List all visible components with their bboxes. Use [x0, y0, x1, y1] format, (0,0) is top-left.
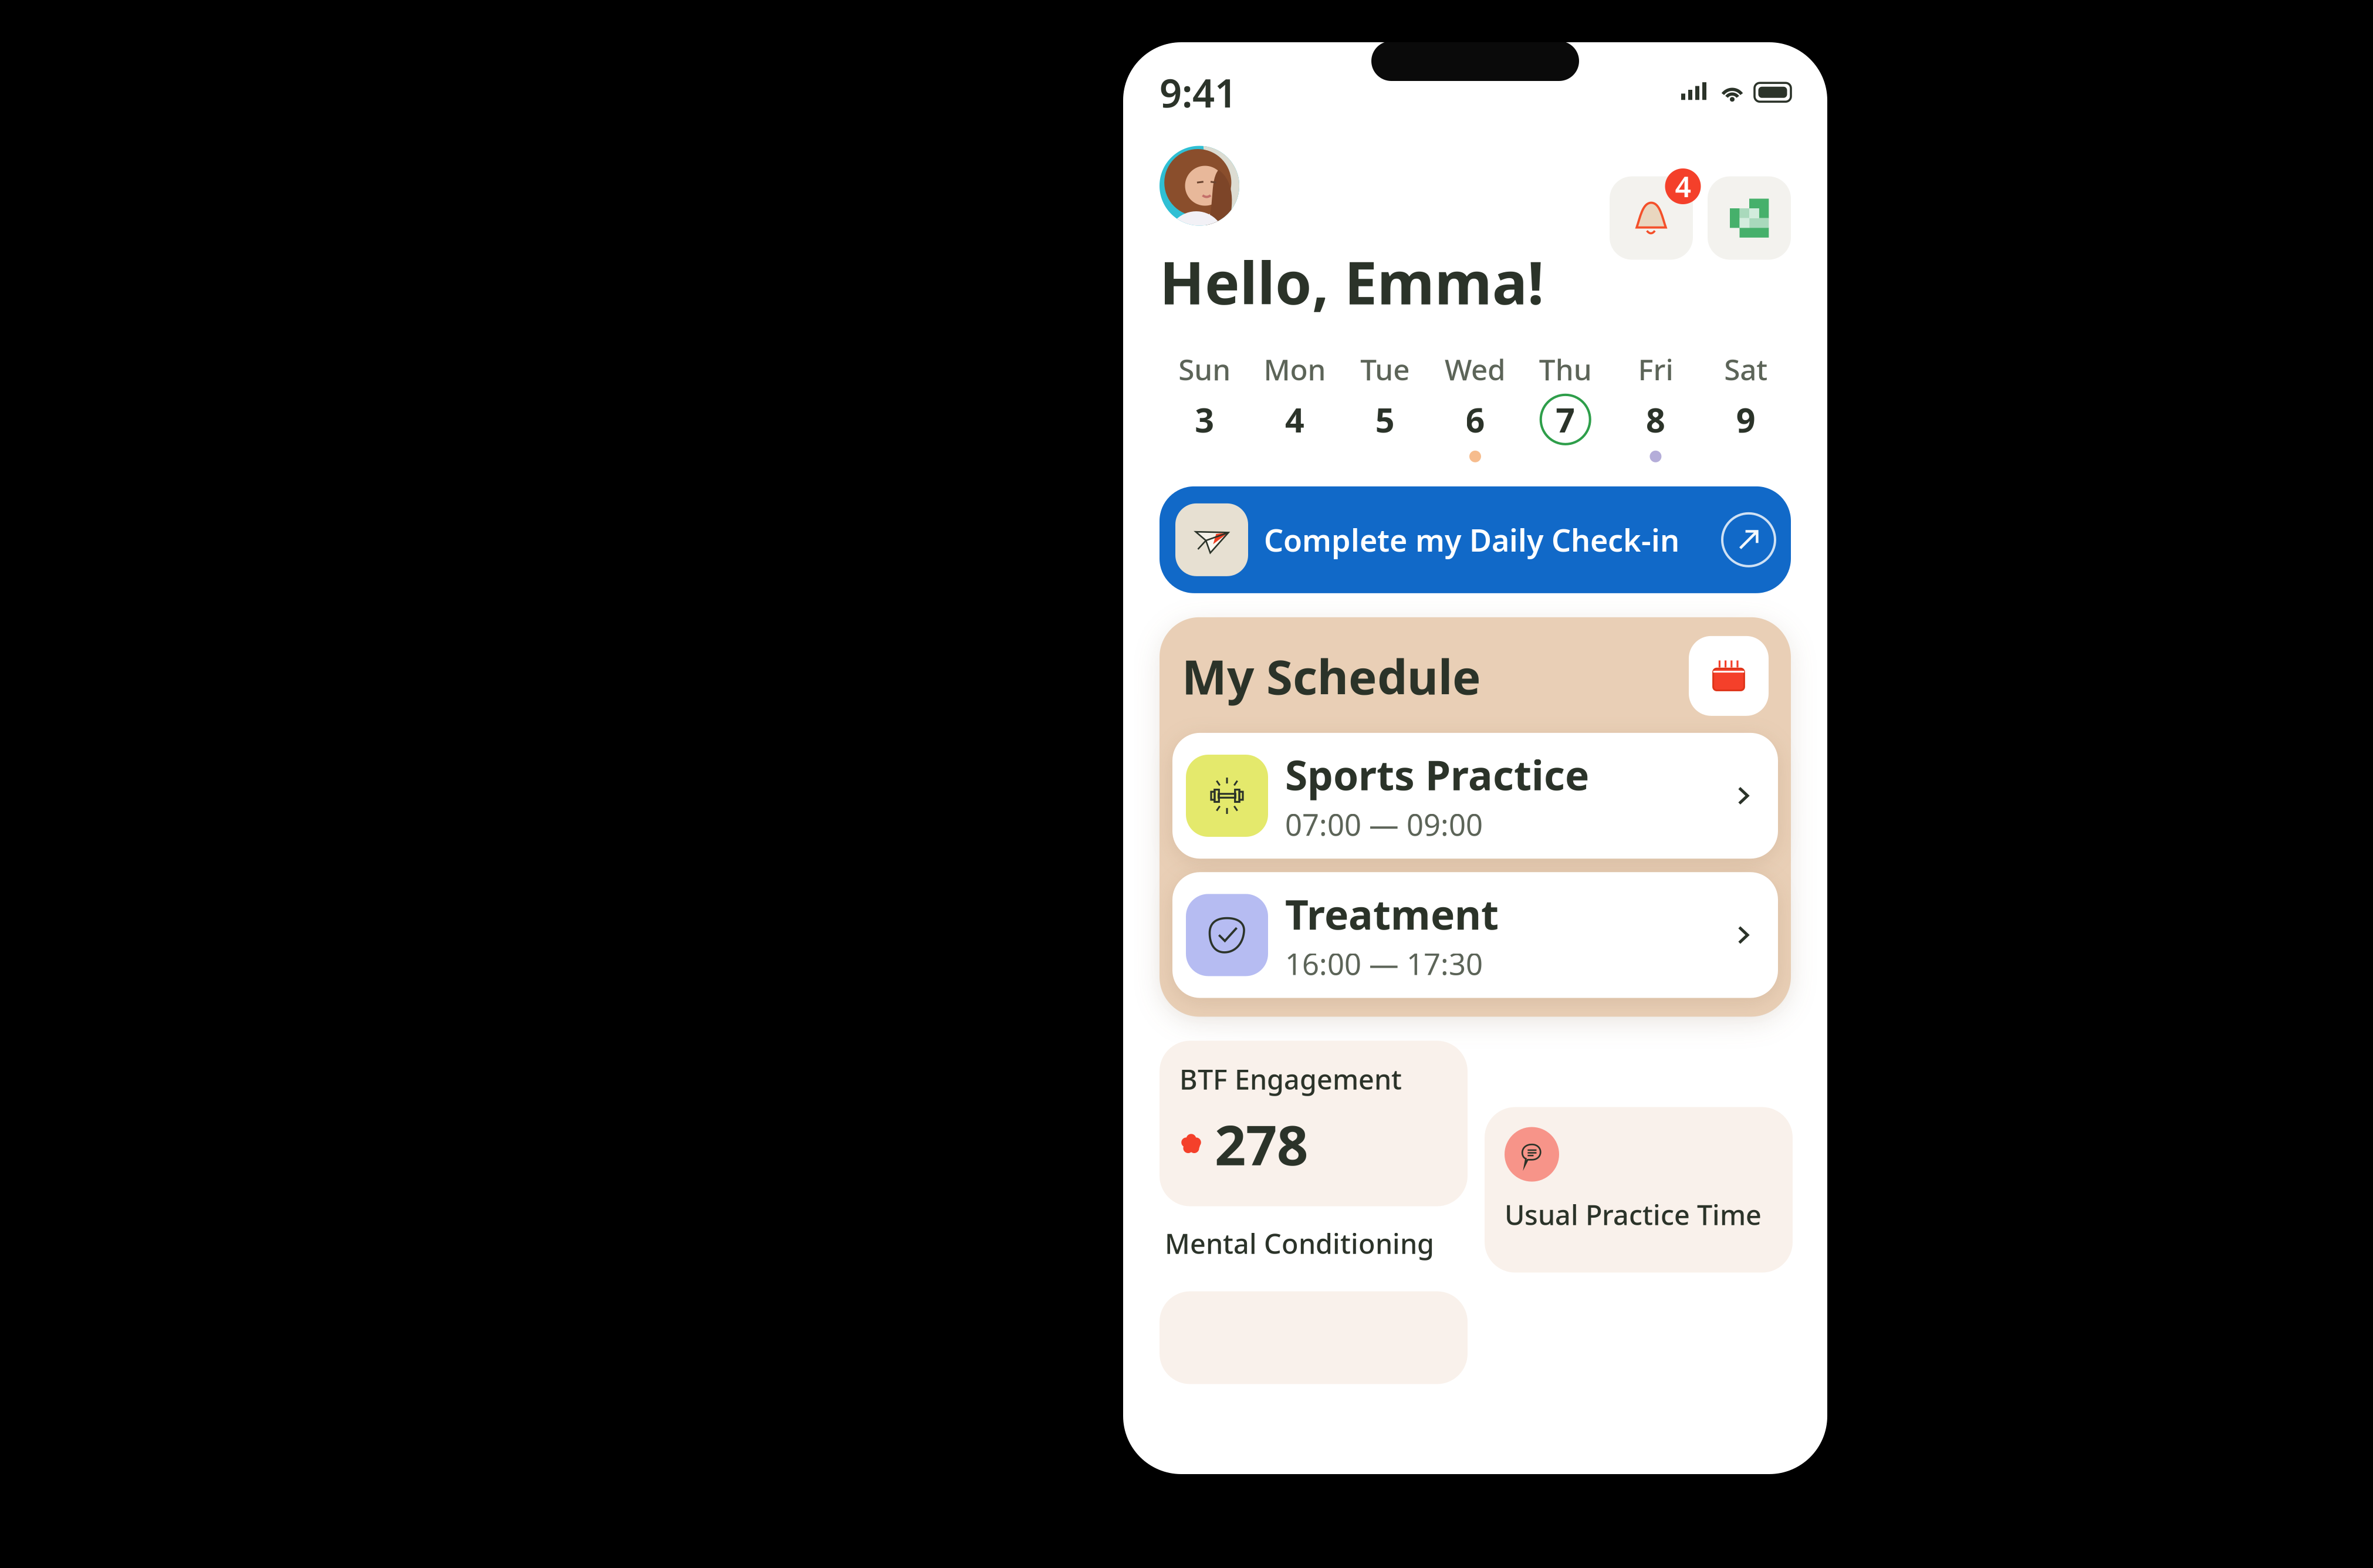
- staticText: 278: [1215, 1108, 1308, 1180]
- staticText: 6: [1466, 397, 1485, 442]
- button[interactable]: Mon: [1250, 350, 1340, 462]
- button[interactable]: BTF Engagement: [1160, 1041, 1468, 1206]
- button[interactable]: Sat: [1701, 350, 1791, 462]
- staticText: 9:41: [1160, 66, 1237, 118]
- button[interactable]: Usual Practice Time: [1485, 1107, 1793, 1273]
- staticText: Hello, Emma!: [1160, 243, 1544, 321]
- button[interactable]: Treatment: [1172, 872, 1778, 998]
- button[interactable]: Wed: [1430, 350, 1520, 462]
- staticText: Complete my Daily Check-in: [1264, 520, 1679, 560]
- staticText: 07:00 — 09:00: [1285, 804, 1483, 844]
- staticText: Sports Practice: [1285, 747, 1589, 802]
- button[interactable]: Thu: [1520, 350, 1611, 462]
- staticText: 7: [1556, 397, 1575, 442]
- button[interactable]: Notifications, 4 new: [1610, 176, 1693, 260]
- button[interactable]: Complete my Daily Check-in: [1160, 486, 1791, 593]
- button[interactable]: Progress: [1708, 176, 1791, 260]
- staticText: 5: [1375, 397, 1395, 442]
- staticText: 4: [1675, 168, 1691, 205]
- button[interactable]: Tue: [1340, 350, 1430, 462]
- staticText: BTF Engagement: [1179, 1061, 1402, 1097]
- staticText: 3: [1195, 397, 1214, 442]
- staticText: Fri: [1638, 350, 1673, 388]
- button[interactable]: Profile: [1160, 146, 1239, 226]
- staticText: Mental Conditioning: [1165, 1225, 1434, 1261]
- staticText: 4: [1285, 397, 1305, 442]
- staticText: 9: [1736, 397, 1755, 442]
- button[interactable]: Fri: [1611, 350, 1701, 462]
- staticText: Sun: [1179, 350, 1231, 388]
- staticText: Wed: [1445, 350, 1506, 388]
- staticText: My Schedule: [1182, 644, 1481, 708]
- staticText: Sat: [1724, 350, 1767, 388]
- staticText: Usual Practice Time: [1505, 1196, 1762, 1233]
- button[interactable]: Open calendar: [1689, 636, 1769, 716]
- staticText: 8: [1646, 397, 1665, 442]
- staticText: Mon: [1264, 350, 1326, 388]
- staticText: Tue: [1360, 350, 1410, 388]
- button[interactable]: Sun: [1160, 350, 1250, 462]
- button[interactable]: Sports Practice: [1172, 733, 1778, 859]
- staticText: 16:00 — 17:30: [1285, 944, 1483, 983]
- staticText: Treatment: [1285, 887, 1499, 941]
- staticText: Thu: [1539, 350, 1592, 388]
